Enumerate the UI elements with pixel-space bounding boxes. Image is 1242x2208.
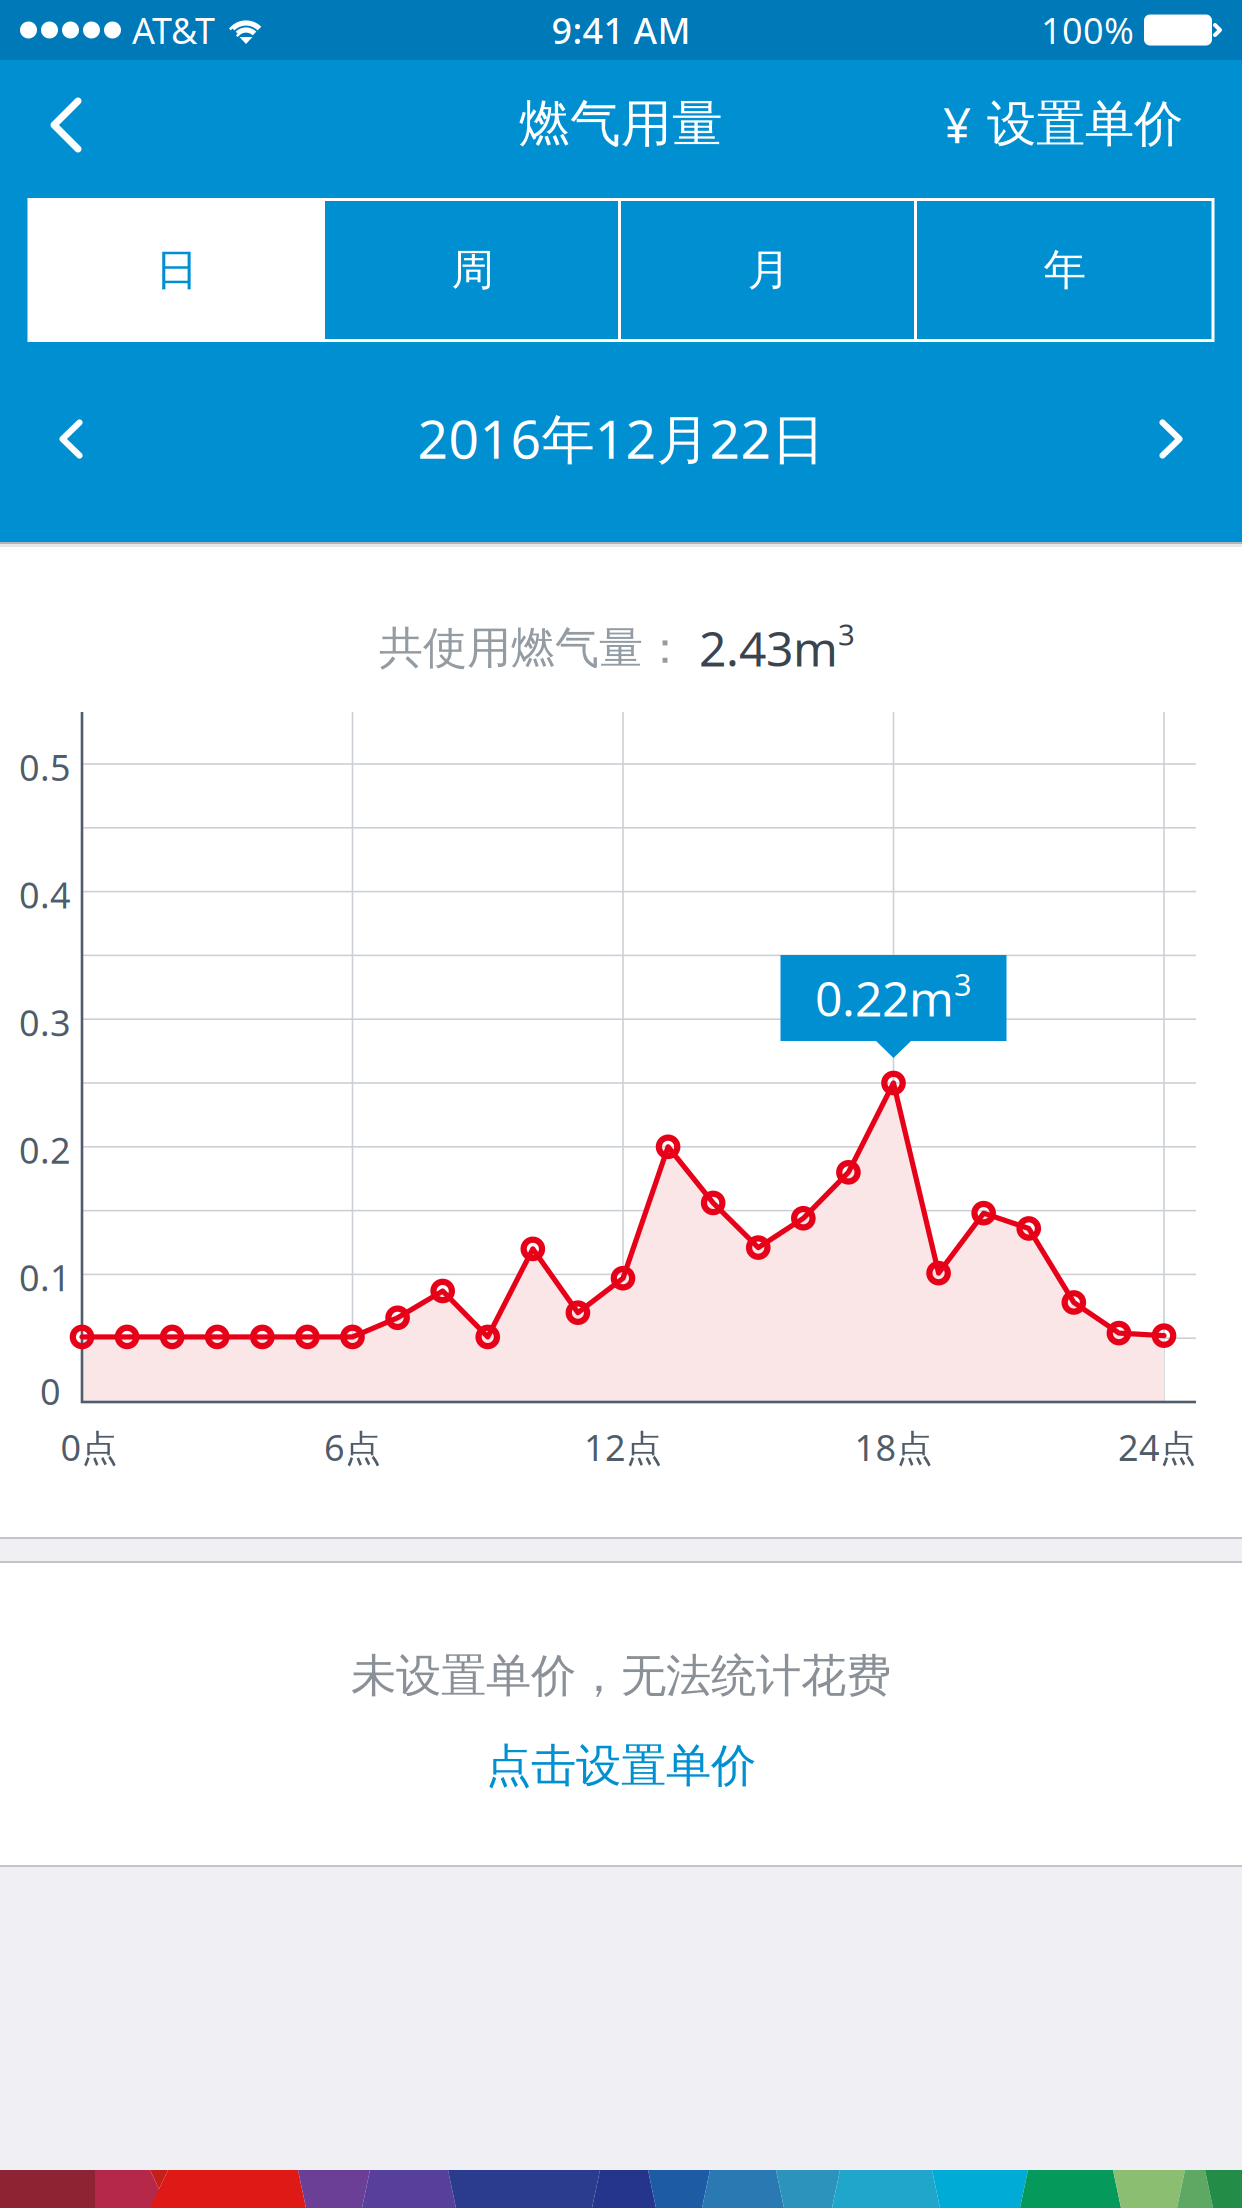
staticText: 100% — [1041, 6, 1134, 54]
staticText: 0 — [40, 1367, 61, 1415]
button[interactable]: 点击设置单价 — [446, 1720, 796, 1812]
button[interactable]: 周 — [325, 199, 621, 340]
staticText: 点击设置单价 — [486, 1738, 756, 1794]
staticText: 18点 — [854, 1423, 932, 1471]
button[interactable]: Previous day — [0, 379, 146, 499]
staticText: ¥ — [943, 91, 971, 157]
button[interactable]: Next day — [1096, 379, 1242, 499]
button[interactable]: 月 — [621, 199, 917, 340]
staticText: 24点 — [1118, 1423, 1196, 1471]
staticText: 6点 — [324, 1423, 381, 1471]
staticText: 未设置单价，无法统计花费 — [351, 1648, 891, 1704]
staticText: 0.1 — [19, 1253, 71, 1301]
staticText: 9:41 AM — [551, 6, 690, 54]
staticText: 燃气用量 — [519, 93, 723, 155]
staticText: 2.43m — [699, 616, 838, 680]
staticText: 月 — [747, 244, 790, 296]
button[interactable]: Back — [6, 69, 126, 181]
staticText: 3 — [838, 614, 855, 653]
staticText: 年 — [1043, 244, 1086, 296]
staticText: 0.22m — [815, 966, 954, 1030]
button[interactable]: ¥ — [917, 68, 1209, 180]
staticText: AT&T — [132, 6, 215, 54]
staticText: 0.4 — [19, 871, 71, 918]
button[interactable]: 日 — [29, 199, 325, 340]
staticText: 0.5 — [19, 743, 71, 791]
staticText: 共使用燃气量： — [379, 621, 687, 675]
staticText: 0.2 — [19, 1126, 71, 1174]
staticText: 12点 — [584, 1423, 662, 1471]
button[interactable]: 年 — [917, 199, 1213, 340]
staticText: 3 — [954, 964, 972, 1004]
staticText: 0点 — [60, 1423, 117, 1471]
staticText: 设置单价 — [987, 94, 1183, 154]
staticText: 周 — [451, 244, 494, 296]
staticText: 日 — [155, 244, 198, 296]
staticText: 0.3 — [19, 998, 71, 1046]
staticText: 2016年12月22日 — [417, 403, 824, 473]
